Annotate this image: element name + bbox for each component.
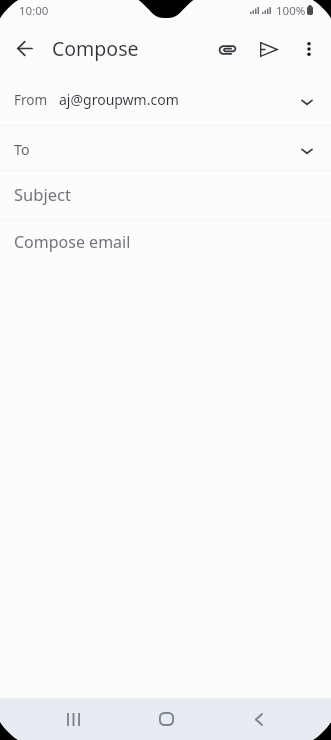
button[interactable]: Back xyxy=(237,698,280,740)
staticText: Subject xyxy=(14,183,71,205)
button[interactable]: Subject xyxy=(0,171,331,219)
button[interactable]: Compose email xyxy=(0,220,331,266)
staticText: aj@groupwm.com xyxy=(59,90,179,109)
button[interactable]: From xyxy=(0,78,331,125)
button[interactable]: Recent apps xyxy=(52,698,95,740)
staticText: 100% xyxy=(276,3,306,19)
staticText: 10:00 xyxy=(19,3,49,19)
staticText: Compose email xyxy=(14,231,131,253)
button[interactable]: Home xyxy=(145,698,188,740)
staticText: To xyxy=(14,140,30,159)
staticText: From xyxy=(14,91,48,109)
staticText: Compose xyxy=(52,35,139,62)
button[interactable]: Expand xyxy=(294,89,320,115)
button[interactable]: To xyxy=(0,126,331,170)
button[interactable]: Expand xyxy=(294,138,320,164)
button[interactable]: Back xyxy=(10,34,39,63)
button[interactable]: More options xyxy=(294,34,324,64)
button[interactable]: Attach file xyxy=(211,33,243,65)
button[interactable]: Send xyxy=(252,32,286,66)
